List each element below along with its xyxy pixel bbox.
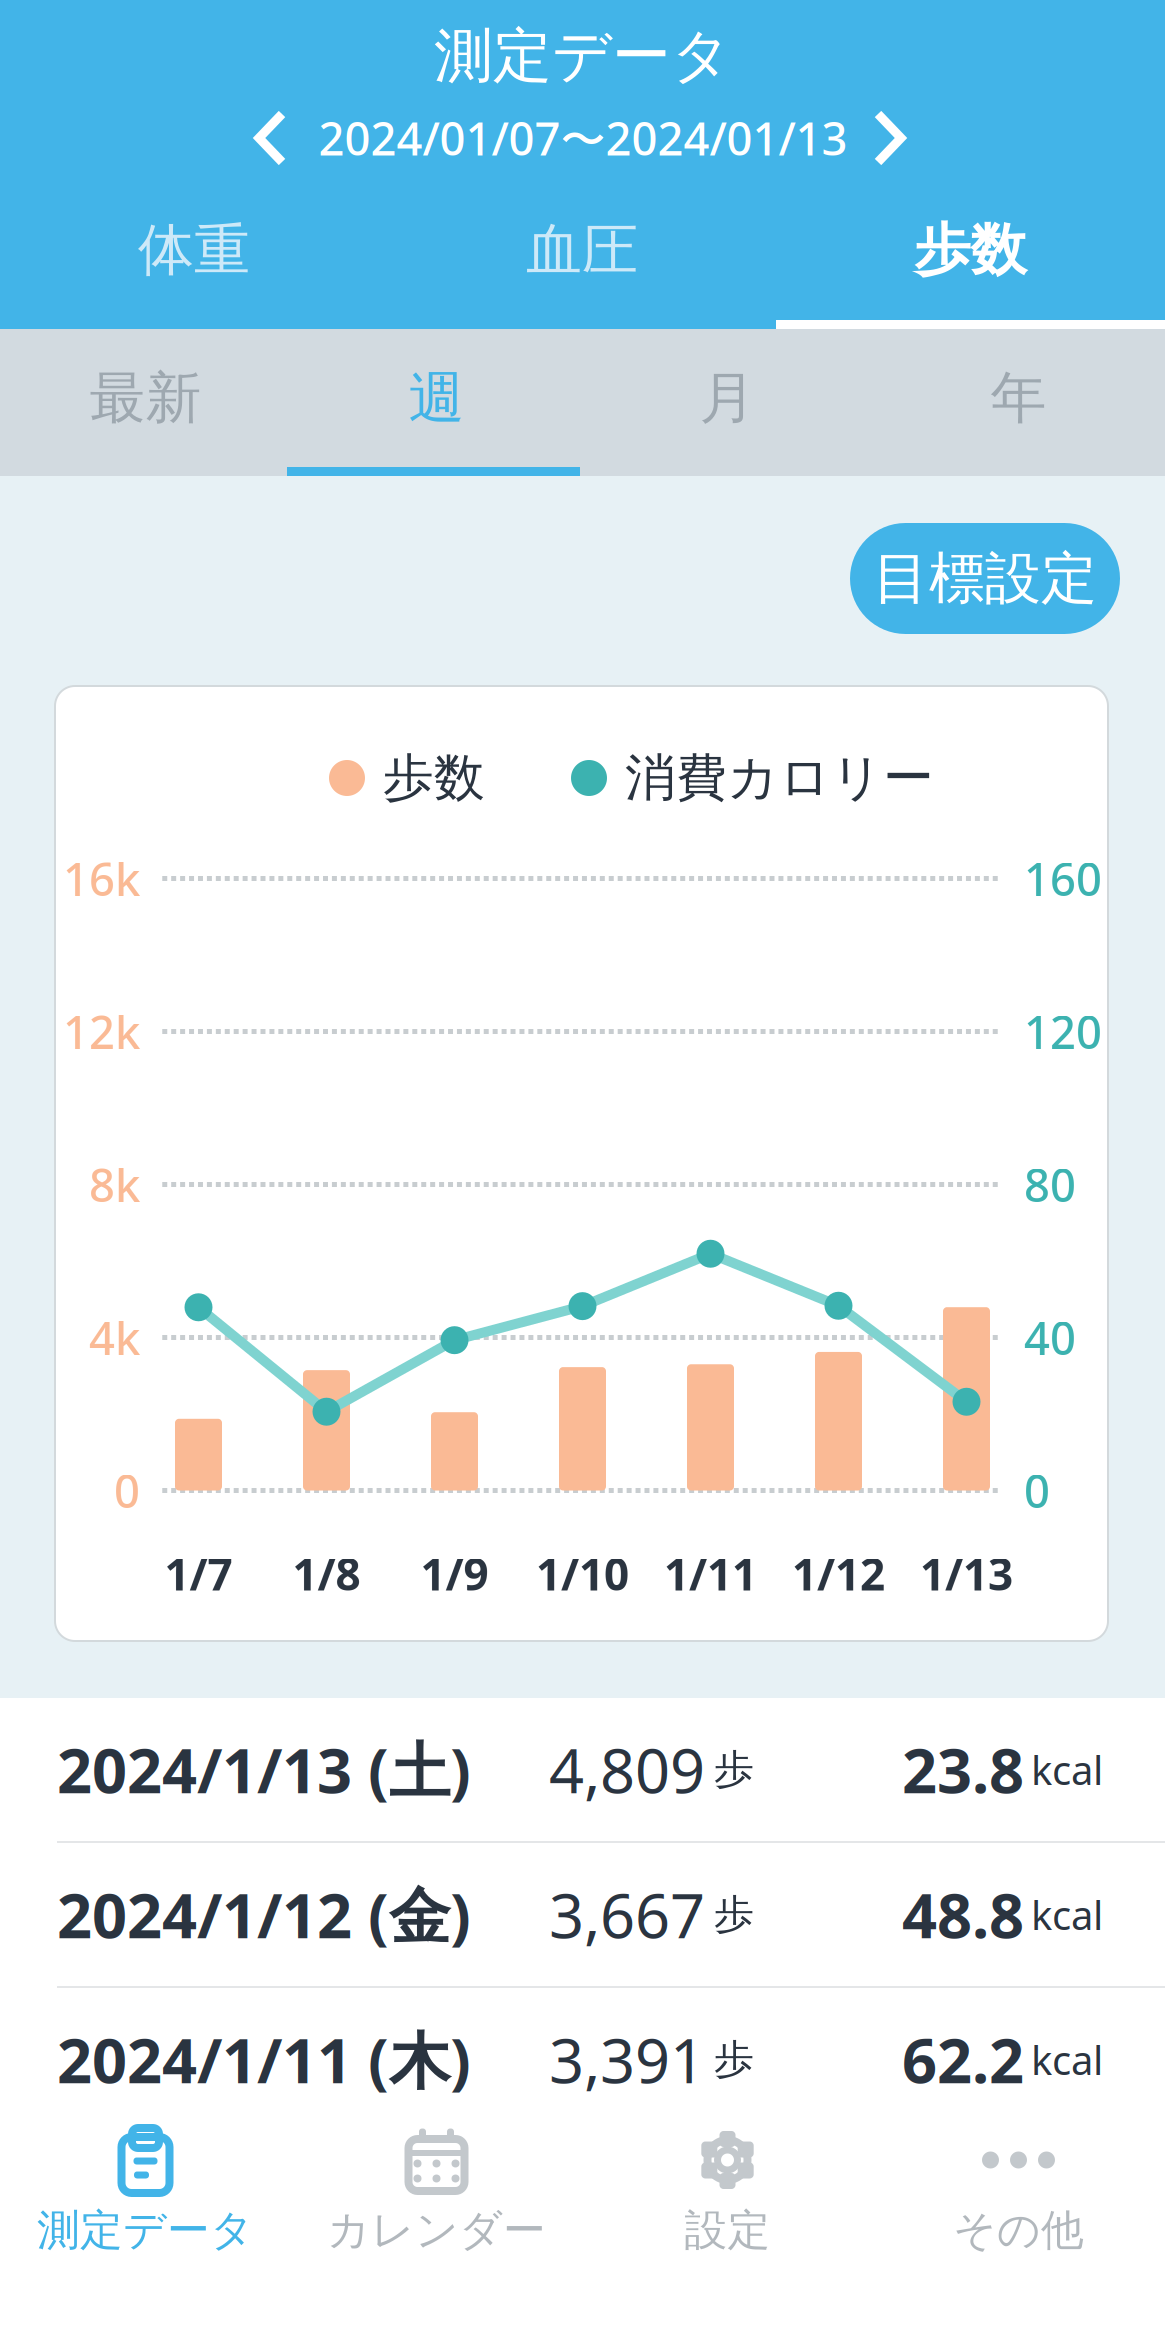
button[interactable]: 血圧	[388, 200, 776, 300]
staticText: 測定データ	[37, 2204, 254, 2256]
staticText: 週	[408, 364, 464, 432]
button[interactable]: 年	[873, 329, 1164, 467]
staticText: 4k	[89, 1307, 140, 1368]
staticText: 月	[699, 364, 755, 432]
button[interactable]: 週	[291, 329, 582, 467]
staticText: 設定	[684, 2204, 770, 2256]
staticText: 1/10	[536, 1544, 629, 1603]
button[interactable]: 設定	[582, 2102, 873, 2329]
staticText: 62.2	[902, 2019, 1024, 2100]
staticText: 80	[1024, 1154, 1076, 1215]
button[interactable]: 2024/1/11 (木)	[0, 1988, 1165, 2131]
staticText: 8k	[89, 1154, 140, 1215]
button[interactable]: 2024/1/13 (土)	[0, 1698, 1165, 1841]
staticText: 1/8	[292, 1544, 360, 1603]
button[interactable]: 歩数	[776, 200, 1165, 300]
staticText: kcal	[1031, 2033, 1103, 2086]
staticText: 歩数	[914, 216, 1026, 284]
staticText: 23.8	[902, 1729, 1024, 1810]
staticText: カレンダー	[327, 2204, 546, 2256]
button[interactable]: カレンダー	[291, 2102, 582, 2329]
button[interactable]: 前の週	[226, 96, 318, 180]
staticText: 血圧	[526, 216, 638, 284]
staticText: 歩数	[383, 747, 485, 809]
staticText: 120	[1024, 1001, 1102, 1062]
staticText: 1/11	[664, 1544, 757, 1603]
button[interactable]: 2024/1/12 (金)	[0, 1843, 1165, 1986]
staticText: 測定データ	[434, 20, 731, 92]
button[interactable]: 最新	[0, 329, 291, 467]
staticText: 消費カロリー	[625, 747, 934, 809]
staticText: 2024/1/13 (土)	[57, 1729, 471, 1810]
staticText: 体重	[138, 216, 250, 284]
staticText: 最新	[89, 364, 201, 432]
staticText: kcal	[1031, 1743, 1103, 1796]
staticText: 12k	[63, 1001, 140, 1062]
staticText: 歩	[714, 2035, 754, 2084]
button[interactable]: 測定データ	[0, 2102, 291, 2329]
staticText: 2024/1/11 (木)	[57, 2019, 471, 2100]
staticText: 0	[1024, 1460, 1050, 1521]
staticText: 1/13	[920, 1544, 1013, 1603]
staticText: 4,809	[549, 1729, 705, 1810]
staticText: 3,391	[549, 2019, 705, 2100]
staticText: 3,667	[549, 1874, 705, 1955]
staticText: 16k	[63, 848, 140, 909]
staticText: その他	[953, 2204, 1084, 2256]
staticText: 歩	[714, 1745, 754, 1794]
button[interactable]: 体重	[0, 200, 388, 300]
button[interactable]: 目標設定	[850, 523, 1120, 634]
staticText: 0	[114, 1460, 140, 1521]
staticText: 48.8	[902, 1874, 1024, 1955]
staticText: 40	[1024, 1307, 1076, 1368]
button[interactable]: 次の週	[842, 96, 934, 180]
staticText: 年	[990, 364, 1046, 432]
staticText: 1/9	[420, 1544, 488, 1603]
staticText: 2024/1/12 (金)	[57, 1874, 471, 1955]
staticText: kcal	[1031, 1888, 1103, 1941]
staticText: 目標設定	[873, 544, 1097, 613]
staticText: 1/7	[164, 1544, 232, 1603]
staticText: 160	[1024, 848, 1102, 909]
staticText: 1/12	[792, 1544, 885, 1603]
staticText: 歩	[714, 1890, 754, 1939]
button[interactable]: 月	[582, 329, 873, 467]
staticText: 2024/01/07〜2024/01/13	[318, 108, 847, 168]
button[interactable]: その他	[873, 2102, 1164, 2329]
